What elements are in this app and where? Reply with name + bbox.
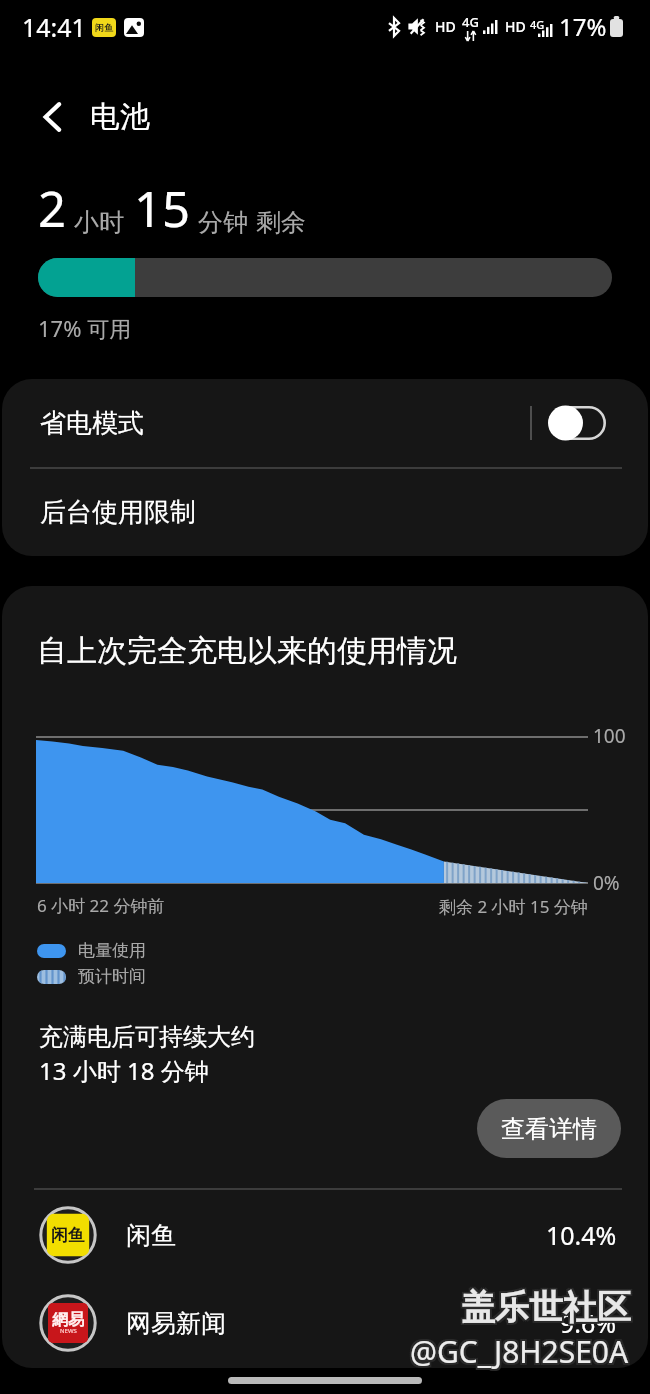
- staticText: 闲鱼: [51, 1225, 85, 1246]
- button[interactable]: 后台使用限制: [2, 469, 648, 556]
- staticText: @GC_J8H2SE0A: [412, 1331, 631, 1372]
- staticText: 網易: [52, 1310, 84, 1330]
- staticText: 电池: [90, 98, 150, 136]
- staticText: 盖乐世社区: [463, 1288, 633, 1331]
- button[interactable]: 查看详情: [477, 1099, 621, 1158]
- staticText: 14:41: [22, 10, 86, 44]
- staticText: 预计时间: [78, 966, 146, 987]
- staticText: 闲鱼: [126, 1220, 176, 1251]
- button[interactable]: 闲鱼: [2, 1191, 648, 1279]
- staticText: @GC_J8H2SE0A: [408, 1329, 627, 1370]
- staticText: 6 小时 22 分钟前: [37, 894, 165, 917]
- staticText: 4G: [530, 17, 545, 32]
- staticText: @GC_J8H2SE0A: [410, 1333, 629, 1374]
- staticText: 0%: [593, 870, 620, 896]
- staticText: 盖乐世社区: [461, 1286, 631, 1329]
- staticText: 盖乐世社区: [463, 1284, 633, 1327]
- staticText: 电量使用: [78, 940, 146, 961]
- staticText: @GC_J8H2SE0A: [408, 1333, 627, 1374]
- staticText: 盖乐世社区: [461, 1288, 631, 1331]
- staticText: 闲鱼: [95, 22, 113, 33]
- staticText: 15: [134, 175, 191, 242]
- staticText: 4G: [462, 13, 479, 31]
- staticText: 网易新闻: [126, 1308, 226, 1339]
- staticText: 查看详情: [501, 1114, 597, 1144]
- button[interactable]: Back: [29, 94, 75, 140]
- staticText: 盖乐世社区: [459, 1284, 629, 1327]
- staticText: 100: [593, 723, 626, 749]
- staticText: HD: [435, 17, 456, 36]
- staticText: 后台使用限制: [40, 496, 196, 529]
- staticText: 自上次完全充电以来的使用情况: [37, 632, 457, 670]
- staticText: @GC_J8H2SE0A: [410, 1329, 629, 1370]
- button[interactable]: 省电模式: [2, 379, 648, 467]
- staticText: 2: [38, 175, 67, 242]
- staticText: @GC_J8H2SE0A: [408, 1331, 627, 1372]
- staticText: 13 小时 18 分钟: [39, 1054, 209, 1087]
- staticText: 盖乐世社区: [459, 1286, 629, 1329]
- staticText: 10.4%: [546, 1218, 617, 1252]
- staticText: 盖乐世社区: [459, 1288, 629, 1331]
- staticText: @GC_J8H2SE0A: [412, 1329, 631, 1370]
- staticText: 盖乐世社区: [461, 1284, 631, 1327]
- staticText: 盖乐世社区: [463, 1286, 633, 1329]
- button[interactable]: 網易: [2, 1279, 648, 1367]
- staticText: 小时: [74, 207, 124, 238]
- staticText: 17% 可用: [38, 313, 132, 343]
- staticText: NEWS: [60, 1327, 77, 1335]
- staticText: @GC_J8H2SE0A: [412, 1333, 631, 1374]
- staticText: 17%: [559, 10, 607, 43]
- staticText: 分钟: [198, 207, 248, 238]
- staticText: @GC_J8H2SE0A: [410, 1331, 629, 1372]
- staticText: 9.6%: [560, 1306, 617, 1340]
- staticText: 剩余: [256, 207, 306, 238]
- staticText: HD: [505, 17, 526, 36]
- staticText: 省电模式: [40, 407, 144, 440]
- staticText: 剩余 2 小时 15 分钟: [439, 895, 588, 918]
- staticText: 充满电后可持续大约: [39, 1022, 255, 1052]
